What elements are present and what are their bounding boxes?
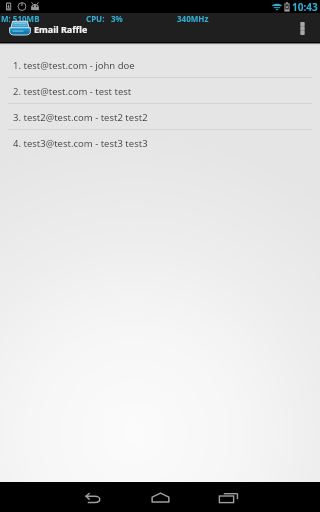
button[interactable]: Recent apps — [206, 483, 250, 512]
button[interactable]: More options — [288, 14, 316, 43]
staticText: 2. test@test.com - test test — [13, 85, 132, 98]
staticText: CPU: — [86, 13, 105, 24]
staticText: 3% — [111, 13, 123, 24]
staticText: 3. test2@test.com - test2 test2 — [13, 111, 148, 124]
staticText: 1. test@test.com - john doe — [13, 59, 135, 72]
button[interactable]: 1. test@test.com - john doe — [0, 52, 320, 78]
button[interactable]: 2. test@test.com - test test — [0, 78, 320, 104]
button[interactable]: Home — [138, 482, 182, 512]
button[interactable]: Back — [70, 483, 114, 512]
staticText: 4. test3@test.com - test3 test3 — [13, 137, 148, 150]
button[interactable]: 4. test3@test.com - test3 test3 — [0, 130, 320, 156]
staticText: Email Raffle — [34, 23, 88, 35]
staticText: 10:43 — [292, 0, 318, 13]
staticText: 340MHz — [177, 13, 209, 24]
button[interactable]: 3. test2@test.com - test2 test2 — [0, 104, 320, 130]
staticText: M: 510MB — [1, 13, 40, 24]
